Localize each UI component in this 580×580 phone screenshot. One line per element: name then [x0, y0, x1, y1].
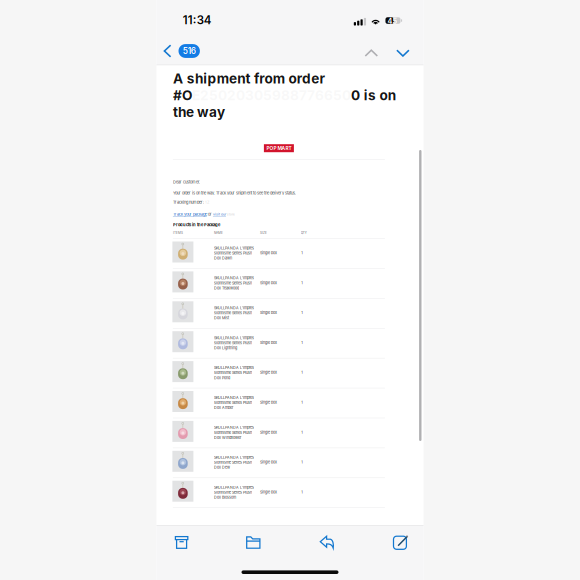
staticText: SKULLPANDA L'Impres — [214, 306, 254, 310]
button[interactable]: 516 — [157, 38, 206, 64]
staticText: Single box — [260, 490, 277, 494]
staticText: sionnisme Series Plush — [214, 490, 252, 494]
staticText: Dear customer, — [173, 179, 200, 184]
staticText: ITEMS — [173, 231, 183, 235]
button[interactable]: Archive — [166, 527, 197, 557]
staticText: SKULLPANDA L'Impres — [214, 336, 254, 340]
staticText: 1 — [301, 400, 302, 405]
staticText: sionnisme Series Plush — [214, 311, 252, 315]
staticText: Single box — [260, 400, 277, 405]
staticText: Your order is on the way. Track your shi… — [173, 190, 296, 195]
staticText: 516 — [183, 46, 196, 56]
staticText: 1 — [301, 251, 302, 255]
button[interactable]: visit our — [213, 212, 226, 216]
staticText: visit our — [213, 212, 226, 216]
staticText: SKULLPANDA L'Impres — [214, 276, 254, 280]
staticText: 1Z — [205, 200, 210, 205]
staticText: 11:34 — [183, 13, 212, 27]
staticText: A shipment from order — [173, 70, 325, 87]
staticText: Doll Mist — [214, 316, 229, 320]
staticText: sionnisme Series Plush — [214, 281, 252, 285]
button[interactable]: Reply — [311, 527, 342, 557]
staticText: Single box — [260, 370, 277, 375]
button[interactable]: Move to folder — [238, 527, 269, 557]
staticText: 1 — [301, 430, 302, 434]
staticText: Single box — [260, 251, 277, 255]
staticText: sionnisme Series Plush — [214, 460, 252, 465]
staticText: Doll Blossom — [214, 495, 236, 500]
staticText: Single box — [260, 340, 277, 345]
staticText: Doll Teakwood — [214, 286, 239, 290]
staticText: 45 — [387, 17, 397, 26]
staticText: Single box — [260, 460, 277, 464]
staticText: or — [207, 212, 213, 217]
staticText: Doll Windflower — [214, 435, 241, 440]
staticText: POP MART — [266, 145, 291, 151]
staticText: sionnisme Series Plush — [214, 251, 252, 255]
staticText: SIZE — [260, 231, 267, 235]
staticText: #O — [173, 87, 192, 104]
staticText: NAME — [214, 231, 223, 235]
staticText: SKULLPANDA L'Impres — [214, 246, 254, 250]
button[interactable]: Previous message — [356, 41, 386, 65]
staticText: sionnisme Series Plush — [214, 341, 252, 345]
staticText: Single box — [260, 310, 277, 315]
staticText: Products in the Package — [173, 222, 220, 227]
staticText: SKULLPANDA L'Impres — [214, 395, 254, 400]
staticText: SKULLPANDA L'Impres — [214, 365, 254, 370]
staticText: SKULLPANDA L'Impres — [214, 455, 254, 460]
staticText: 1 — [301, 310, 302, 315]
staticText: sionnisme Series Plush — [214, 430, 252, 435]
staticText: Tracking number: — [173, 200, 205, 205]
staticText: store — [226, 212, 235, 216]
staticText: Single box — [260, 430, 277, 434]
staticText: 1 — [301, 460, 302, 464]
button[interactable]: Next message — [388, 41, 418, 65]
staticText: QTY — [301, 231, 307, 235]
staticText: Doll Pond — [214, 376, 230, 380]
staticText: Track your package — [173, 212, 207, 217]
staticText: sionnisme Series Plush — [214, 370, 252, 375]
staticText: SKULLPANDA L'Impres — [214, 425, 254, 430]
staticText: Doll Dawn — [214, 256, 232, 260]
staticText: Doll Amber — [214, 405, 233, 410]
staticText: Doll Lightning — [214, 346, 237, 350]
staticText: the way — [173, 104, 225, 120]
staticText: 1 — [301, 281, 302, 285]
staticText: 0 is on — [351, 87, 396, 104]
staticText: 1 — [301, 340, 302, 345]
staticText: Doll Dew — [214, 465, 230, 470]
button[interactable]: Track your package — [173, 212, 207, 217]
staticText: sionnisme Series Plush — [214, 400, 252, 405]
staticText: SKULLPANDA L'Impres — [214, 485, 254, 489]
staticText: Single box — [260, 281, 277, 285]
staticText: 1 — [301, 370, 302, 375]
button[interactable]: Compose — [385, 527, 416, 557]
staticText: 1 — [301, 490, 302, 494]
